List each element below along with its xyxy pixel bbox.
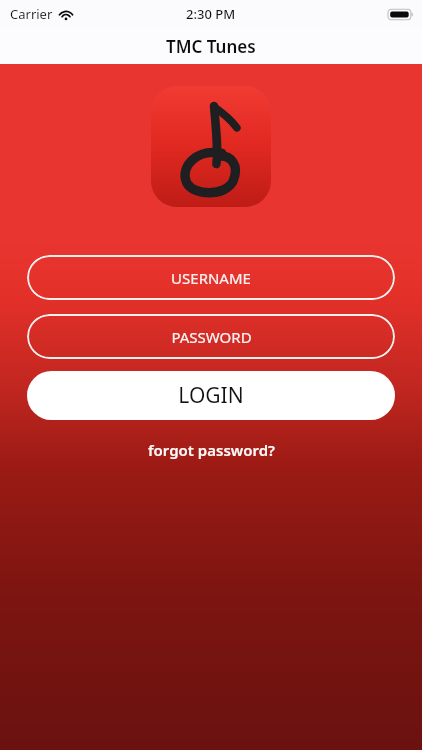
staticText: Carrier	[10, 5, 53, 23]
button[interactable]: TMC Tunes logo	[151, 86, 271, 207]
staticText: LOGIN	[178, 381, 244, 410]
button[interactable]: PASSWORD	[27, 314, 395, 359]
staticText: forgot password?	[148, 440, 275, 460]
button[interactable]: LOGIN	[27, 371, 395, 420]
staticText: USERNAME	[171, 268, 251, 288]
button[interactable]: USERNAME	[27, 255, 395, 300]
staticText: PASSWORD	[171, 327, 252, 347]
staticText: 2:30 PM	[186, 5, 236, 23]
staticText: TMC Tunes	[166, 35, 256, 58]
button[interactable]: forgot password?	[138, 436, 285, 464]
